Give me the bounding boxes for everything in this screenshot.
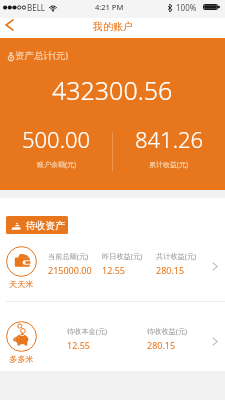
button[interactable]: Back [0,18,20,38]
staticText: 500.00 [22,124,91,154]
staticText: 4:21 PM [95,2,124,12]
staticText: 当前总额(元) [48,251,89,261]
staticText: 432300.56 [52,73,173,107]
staticText: BELL [27,2,46,13]
staticText: 280.15 [156,264,185,276]
staticText: 我的账户 [93,20,133,33]
staticText: 215000.00 [48,264,92,276]
staticText: 待收资产 [26,220,66,232]
staticText: 资产总计(元) [15,49,69,62]
staticText: 100% [176,2,197,13]
staticText: 多多米 [6,354,37,364]
button[interactable]: 待收资产 [6,216,68,234]
staticText: 841.26 [135,124,204,154]
staticText: 天天米 [6,279,37,289]
staticText: 280.15 [147,339,176,351]
staticText: 账户余额(元) [37,160,77,170]
staticText: 待收收益(元) [147,326,188,336]
staticText: 待收本金(元) [67,326,108,336]
staticText: 昨日收益(元) [102,251,143,261]
staticText: 12.55 [67,339,91,351]
button[interactable]: 多多米 [0,319,225,375]
button[interactable]: 天天米 [0,244,225,300]
staticText: 累计收益(元) [149,160,189,170]
staticText: 共计收益(元) [156,251,197,261]
staticText: 12.55 [102,264,126,276]
